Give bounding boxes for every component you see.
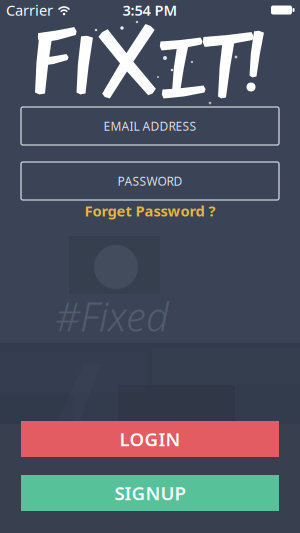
staticText: 3:54 PM	[122, 0, 177, 20]
button[interactable]: PASSWORD	[21, 162, 279, 200]
staticText: Forget Password ?	[84, 201, 215, 220]
staticText: PASSWORD	[117, 173, 182, 189]
staticText: SIGNUP	[114, 481, 185, 505]
button[interactable]: EMAIL ADDRESS	[21, 107, 279, 145]
button[interactable]: LOGIN	[21, 421, 279, 457]
button[interactable]: SIGNUP	[21, 475, 279, 511]
staticText: Carrier	[6, 0, 53, 20]
button[interactable]: Forget Password ?	[78, 200, 221, 221]
staticText: LOGIN	[119, 427, 180, 451]
staticText: EMAIL ADDRESS	[103, 118, 196, 134]
staticText: #Fixed	[55, 289, 169, 342]
